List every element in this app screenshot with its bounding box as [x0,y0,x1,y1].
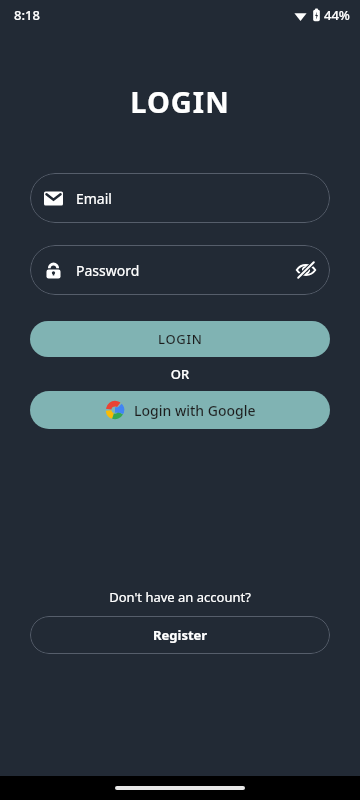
button[interactable]: Register [30,616,330,654]
button[interactable]: Password [30,245,330,295]
staticText: 44% [324,6,350,24]
staticText: LOGIN [158,330,203,348]
button[interactable]: Show password [292,256,320,284]
staticText: Don't have an account? [0,588,360,606]
staticText: LOGIN [0,82,360,121]
staticText: Login with Google [134,401,256,420]
staticText: OR [0,365,360,383]
staticText: Password [76,261,140,280]
button[interactable]: Email [30,173,330,223]
staticText: Register [153,626,208,644]
staticText: Email [76,189,112,208]
staticText: 8:18 [14,6,40,24]
button[interactable]: LOGIN [30,321,330,357]
button[interactable]: Login with Google [30,391,330,429]
